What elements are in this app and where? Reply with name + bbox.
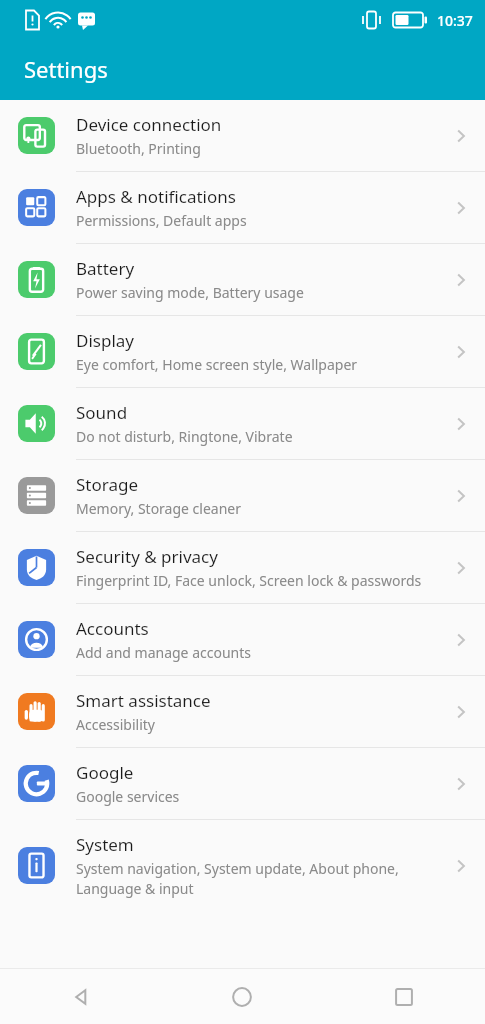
button[interactable]: Back [0, 969, 161, 1024]
button[interactable]: Apps & notifications [0, 172, 485, 243]
staticText: Accounts [76, 617, 149, 640]
button[interactable]: Security & privacy [0, 532, 485, 603]
button[interactable]: Storage [0, 460, 485, 531]
staticText: Apps & notifications [76, 185, 236, 208]
button[interactable]: Device connection [0, 100, 485, 171]
staticText: Memory, Storage cleaner [76, 499, 242, 518]
staticText: Eye comfort, Home screen style, Wallpape… [76, 355, 358, 374]
staticText: 10:37 [437, 11, 473, 30]
button[interactable]: Sound [0, 388, 485, 459]
button[interactable]: Home [161, 969, 323, 1024]
staticText: Accessibility [76, 715, 155, 734]
button[interactable]: Recent apps [323, 969, 485, 1024]
staticText: System navigation, System update, About … [76, 859, 443, 898]
staticText: Sound [76, 401, 128, 424]
button[interactable]: Google [0, 748, 485, 819]
button[interactable]: Display [0, 316, 485, 387]
staticText: System [76, 833, 134, 856]
staticText: Battery [76, 257, 135, 280]
staticText: Do not disturb, Ringtone, Vibrate [76, 427, 293, 446]
button[interactable]: Smart assistance [0, 676, 485, 747]
button[interactable]: Accounts [0, 604, 485, 675]
staticText: Settings [24, 54, 108, 84]
staticText: Power saving mode, Battery usage [76, 283, 304, 302]
staticText: Add and manage accounts [76, 643, 251, 662]
button[interactable]: Battery [0, 244, 485, 315]
staticText: Device connection [76, 113, 222, 136]
button[interactable]: System [0, 820, 485, 911]
staticText: Google services [76, 787, 180, 806]
staticText: Bluetooth, Printing [76, 139, 201, 158]
staticText: Google [76, 761, 134, 784]
staticText: Permissions, Default apps [76, 211, 247, 230]
staticText: Security & privacy [76, 545, 218, 568]
staticText: Fingerprint ID, Face unlock, Screen lock… [76, 571, 422, 590]
staticText: Display [76, 329, 134, 352]
staticText: Smart assistance [76, 689, 211, 712]
staticText: Storage [76, 473, 139, 496]
